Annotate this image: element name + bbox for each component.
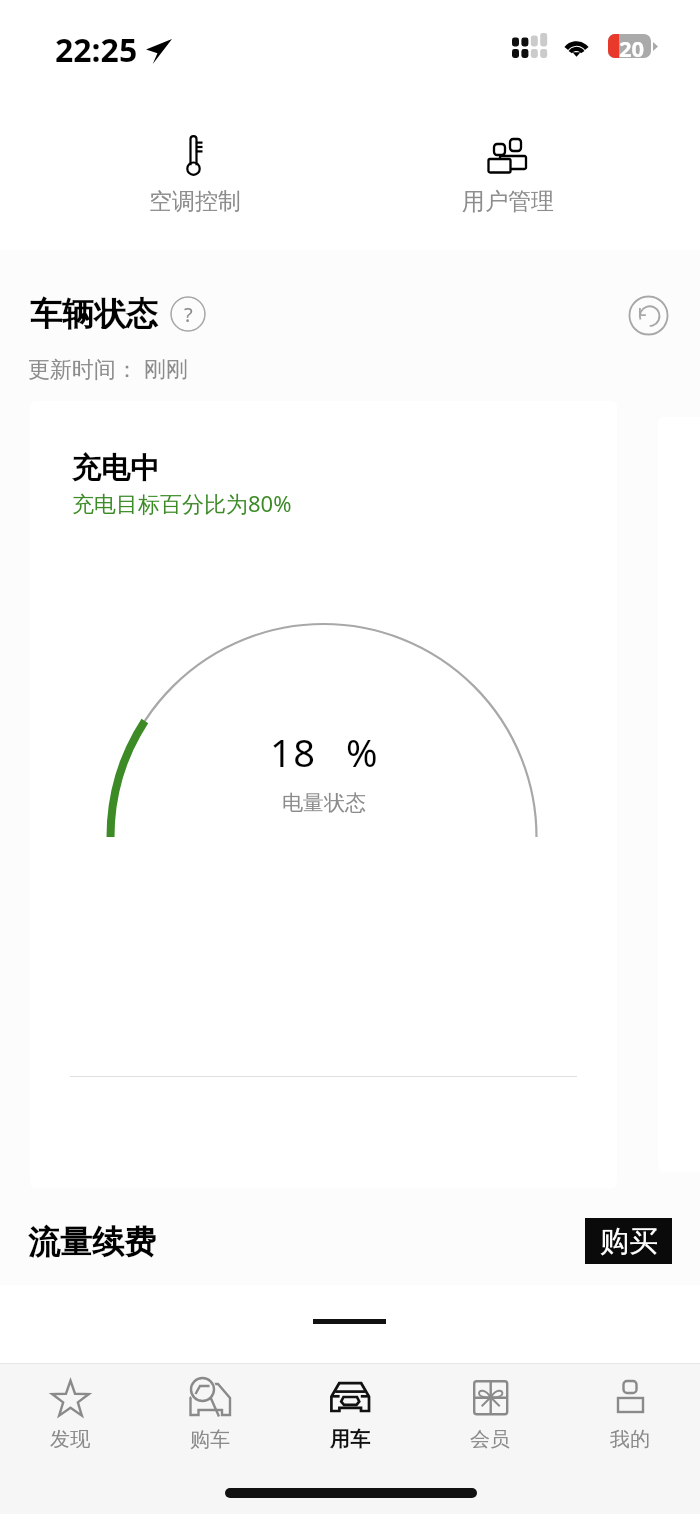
staticText: 更新时间： 刚刚 [28, 353, 188, 383]
staticText: ? [184, 301, 193, 328]
staticText: 18 [270, 726, 317, 778]
staticText: 购买 [600, 1223, 658, 1260]
staticText: 用车 [330, 1427, 370, 1452]
button[interactable]: 帮助 [170, 296, 206, 332]
staticText: 电量状态 [282, 790, 366, 816]
staticText: % [346, 726, 378, 778]
button[interactable]: 刷新 [628, 295, 669, 336]
staticText: 用户管理 [462, 187, 554, 216]
button[interactable]: 发现 [0, 1364, 140, 1474]
button[interactable]: 充电中 [30, 401, 617, 1188]
staticText: 我的 [610, 1427, 650, 1452]
staticText: 购车 [190, 1427, 230, 1452]
button[interactable]: 购买 [585, 1218, 672, 1264]
staticText: 充电目标百分比为80% [72, 488, 292, 518]
staticText: 车辆状态 [30, 294, 158, 334]
staticText: 22:25 [55, 28, 138, 72]
button[interactable]: 我的 [560, 1364, 700, 1474]
staticText: 空调控制 [149, 187, 241, 216]
staticText: 发现 [50, 1427, 90, 1452]
button[interactable]: 用户管理 [448, 92, 568, 216]
staticText: 会员 [470, 1427, 510, 1452]
button[interactable]: 空调控制 [135, 92, 255, 216]
button[interactable]: 用车 [280, 1364, 420, 1474]
staticText: 20 [619, 34, 645, 57]
staticText: 充电中 [72, 450, 159, 487]
button[interactable]: 购车 [140, 1364, 280, 1474]
staticText: 流量续费 [28, 1222, 156, 1262]
button[interactable]: 会员 [420, 1364, 560, 1474]
